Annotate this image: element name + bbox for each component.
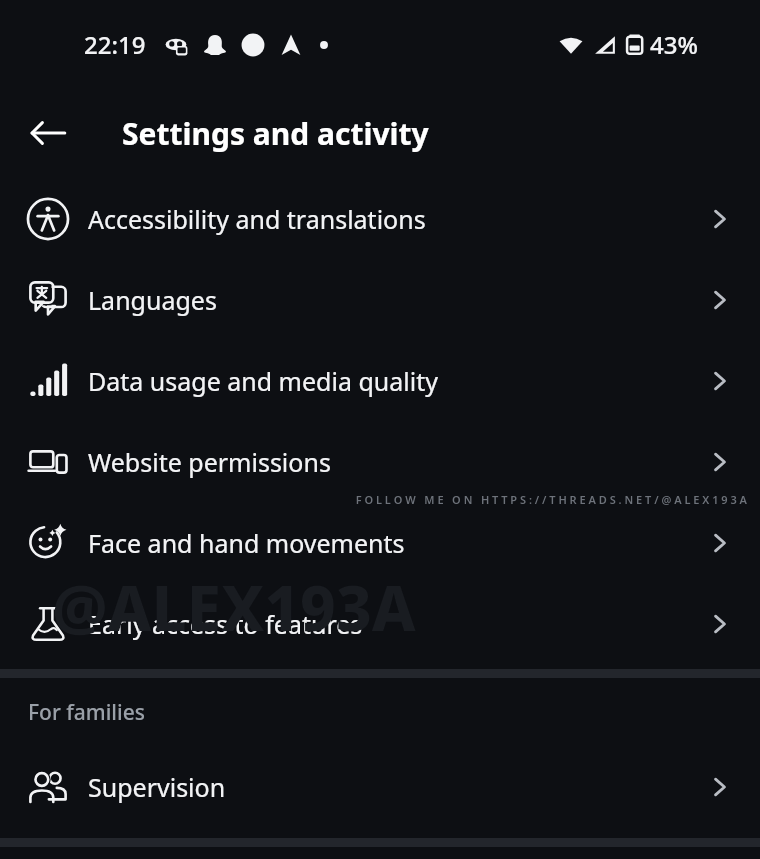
- staticText: Settings and activity: [122, 113, 429, 154]
- staticText: Languages: [88, 283, 217, 317]
- staticText: Early access to features: [88, 607, 363, 641]
- staticText: Website permissions: [88, 445, 331, 479]
- staticText: @ALEX193A: [52, 565, 416, 649]
- staticText: Supervision: [88, 770, 226, 804]
- button[interactable]: Early access to features: [0, 583, 760, 664]
- button[interactable]: Website permissions: [0, 421, 760, 502]
- staticText: For families: [28, 698, 145, 727]
- button[interactable]: Supervision: [0, 746, 760, 827]
- staticText: 43%: [650, 28, 698, 61]
- staticText: 22:19: [84, 28, 146, 61]
- button[interactable]: Back: [22, 107, 74, 159]
- button[interactable]: Languages: [0, 259, 760, 340]
- staticText: Accessibility and translations: [88, 202, 426, 236]
- staticText: Face and hand movements: [88, 526, 405, 560]
- staticText: Data usage and media quality: [88, 364, 438, 398]
- button[interactable]: Accessibility and translations: [0, 178, 760, 259]
- staticText: F O L L O W M E O N H T T P S : / / T H …: [355, 492, 747, 507]
- button[interactable]: Face and hand movements: [0, 502, 760, 583]
- button[interactable]: Data usage and media quality: [0, 340, 760, 421]
